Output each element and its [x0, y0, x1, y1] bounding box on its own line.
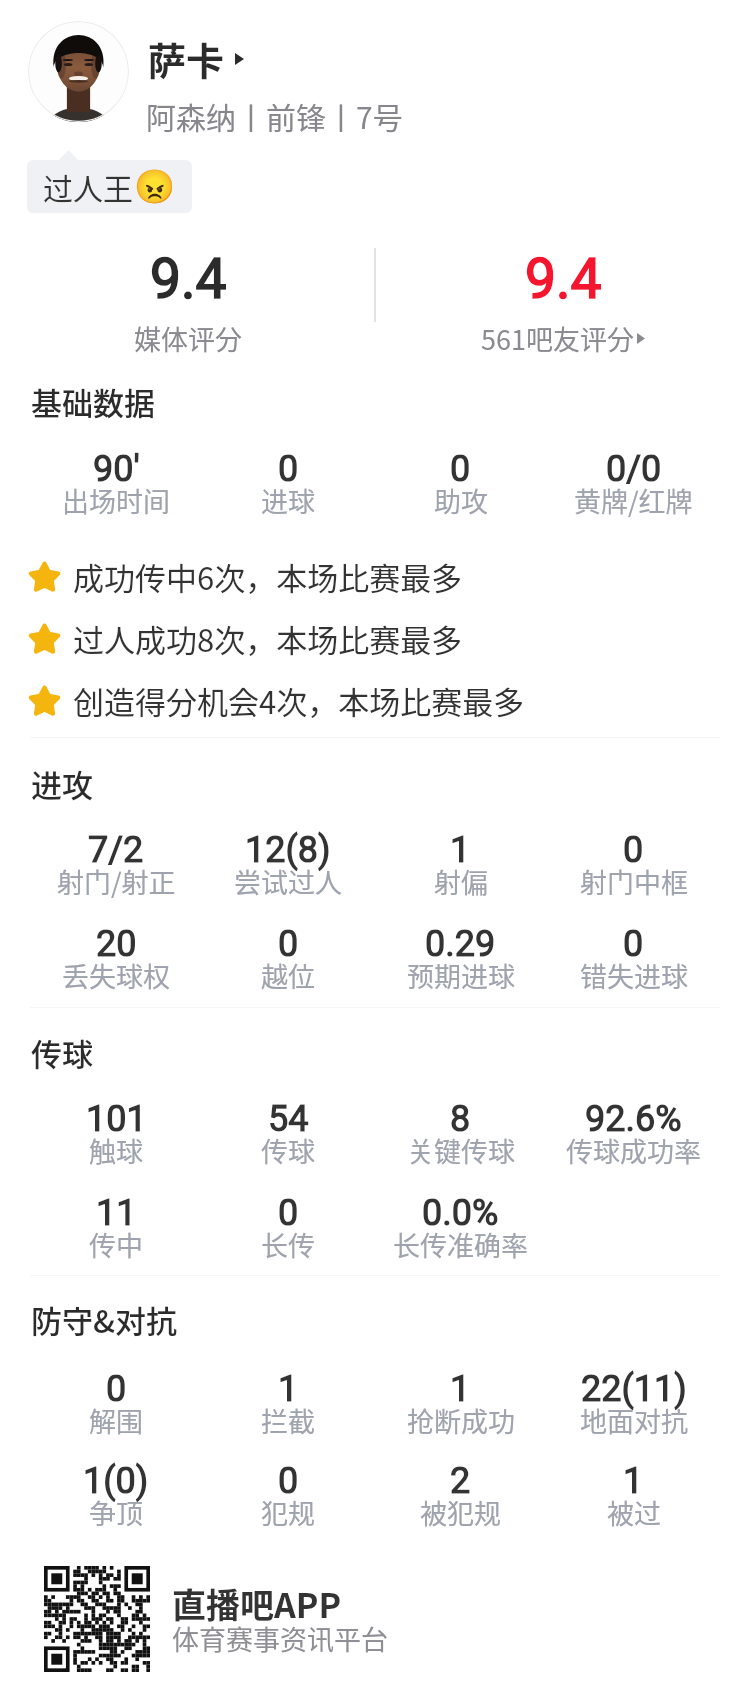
staticText: 争顶 — [89, 1493, 143, 1532]
staticText: 被犯规 — [420, 1493, 501, 1532]
staticText: 基础数据 — [31, 379, 155, 419]
staticText: 过人王 — [43, 165, 133, 208]
staticText: 越位 — [261, 956, 315, 995]
staticText: 92.6% — [585, 1098, 682, 1140]
staticText: 触球 — [89, 1131, 143, 1170]
staticText: 预期进球 — [407, 956, 515, 995]
staticText: 长传 — [261, 1225, 315, 1264]
staticText: 0 — [623, 829, 644, 871]
staticText: 犯规 — [261, 1493, 315, 1532]
staticText: 媒体评分 — [134, 319, 242, 358]
staticText: 拦截 — [261, 1401, 315, 1440]
staticText: 地面对抗 — [580, 1401, 688, 1440]
staticText: 体育赛事资讯平台 — [172, 1619, 388, 1658]
button[interactable]: 过人成功8次，本场比赛最多 — [28, 607, 463, 669]
staticText: 关键传球 — [407, 1131, 515, 1170]
staticText: 丢失球权 — [62, 956, 170, 995]
staticText: 进攻 — [31, 761, 93, 801]
staticText: 0 — [278, 923, 299, 965]
staticText: 错失进球 — [580, 956, 688, 995]
staticText: 0 — [450, 448, 471, 490]
staticText: 射门/射正 — [57, 862, 176, 901]
staticText: 0 — [106, 1368, 127, 1410]
staticText: 7/2 — [88, 829, 144, 871]
staticText: 射偏 — [434, 862, 488, 901]
button[interactable]: 9.4 — [375, 247, 750, 358]
staticText: 😠 — [134, 167, 176, 206]
staticText: 1 — [278, 1368, 299, 1410]
staticText: 2 — [450, 1460, 471, 1502]
staticText: 传球 — [261, 1131, 315, 1170]
staticText: 0.29 — [425, 923, 496, 965]
staticText: 过人成功8次，本场比赛最多 — [73, 616, 463, 661]
staticText: 11 — [96, 1192, 137, 1234]
staticText: 抢断成功 — [407, 1401, 515, 1440]
button[interactable]: 直播吧APP — [44, 1566, 366, 1669]
staticText: 长传准确率 — [393, 1225, 528, 1264]
staticText: 54 — [268, 1098, 309, 1140]
staticText: 8 — [450, 1098, 471, 1140]
staticText: 萨卡 — [148, 31, 225, 86]
staticText: 直播吧APP — [172, 1579, 342, 1628]
staticText: 被过 — [607, 1493, 661, 1532]
staticText: 尝试过人 — [234, 862, 342, 901]
staticText: 传球成功率 — [566, 1131, 701, 1170]
staticText: 射门中框 — [580, 862, 688, 901]
staticText: 9.4 — [525, 247, 602, 311]
staticText: 传球 — [31, 1030, 93, 1070]
staticText: 进球 — [261, 481, 315, 520]
staticText: 创造得分机会4次，本场比赛最多 — [73, 678, 525, 723]
staticText: 出场时间 — [62, 481, 170, 520]
staticText: 1 — [450, 1368, 471, 1410]
staticText: 12(8) — [245, 829, 331, 871]
staticText: 0 — [623, 923, 644, 965]
staticText: 0 — [278, 1460, 299, 1502]
staticText: 0/0 — [606, 448, 662, 490]
button[interactable]: 创造得分机会4次，本场比赛最多 — [28, 669, 525, 731]
staticText: 101 — [86, 1098, 147, 1140]
staticText: 0.0% — [422, 1192, 499, 1234]
staticText: 0 — [278, 448, 299, 490]
staticText: 561吧友评分 — [481, 319, 634, 358]
button[interactable]: 成功传中6次，本场比赛最多 — [28, 545, 463, 607]
button[interactable]: 过人王 — [27, 160, 192, 213]
staticText: 阿森纳丨前锋丨7号 — [146, 94, 403, 137]
staticText: 20 — [96, 923, 137, 965]
staticText: 助攻 — [434, 481, 488, 520]
staticText: 传中 — [89, 1225, 143, 1264]
staticText: 解围 — [89, 1401, 143, 1440]
staticText: 0 — [278, 1192, 299, 1234]
staticText: 1(0) — [83, 1460, 149, 1502]
button[interactable]: 萨卡 — [28, 21, 386, 127]
staticText: 1 — [623, 1460, 644, 1502]
staticText: 防守&对抗 — [31, 1297, 177, 1337]
staticText: 1 — [450, 829, 471, 871]
staticText: 90' — [93, 448, 140, 490]
staticText: 22(11) — [581, 1368, 687, 1410]
staticText: 成功传中6次，本场比赛最多 — [73, 554, 463, 599]
staticText: 黄牌/红牌 — [574, 481, 693, 520]
staticText: 9.4 — [150, 247, 227, 311]
